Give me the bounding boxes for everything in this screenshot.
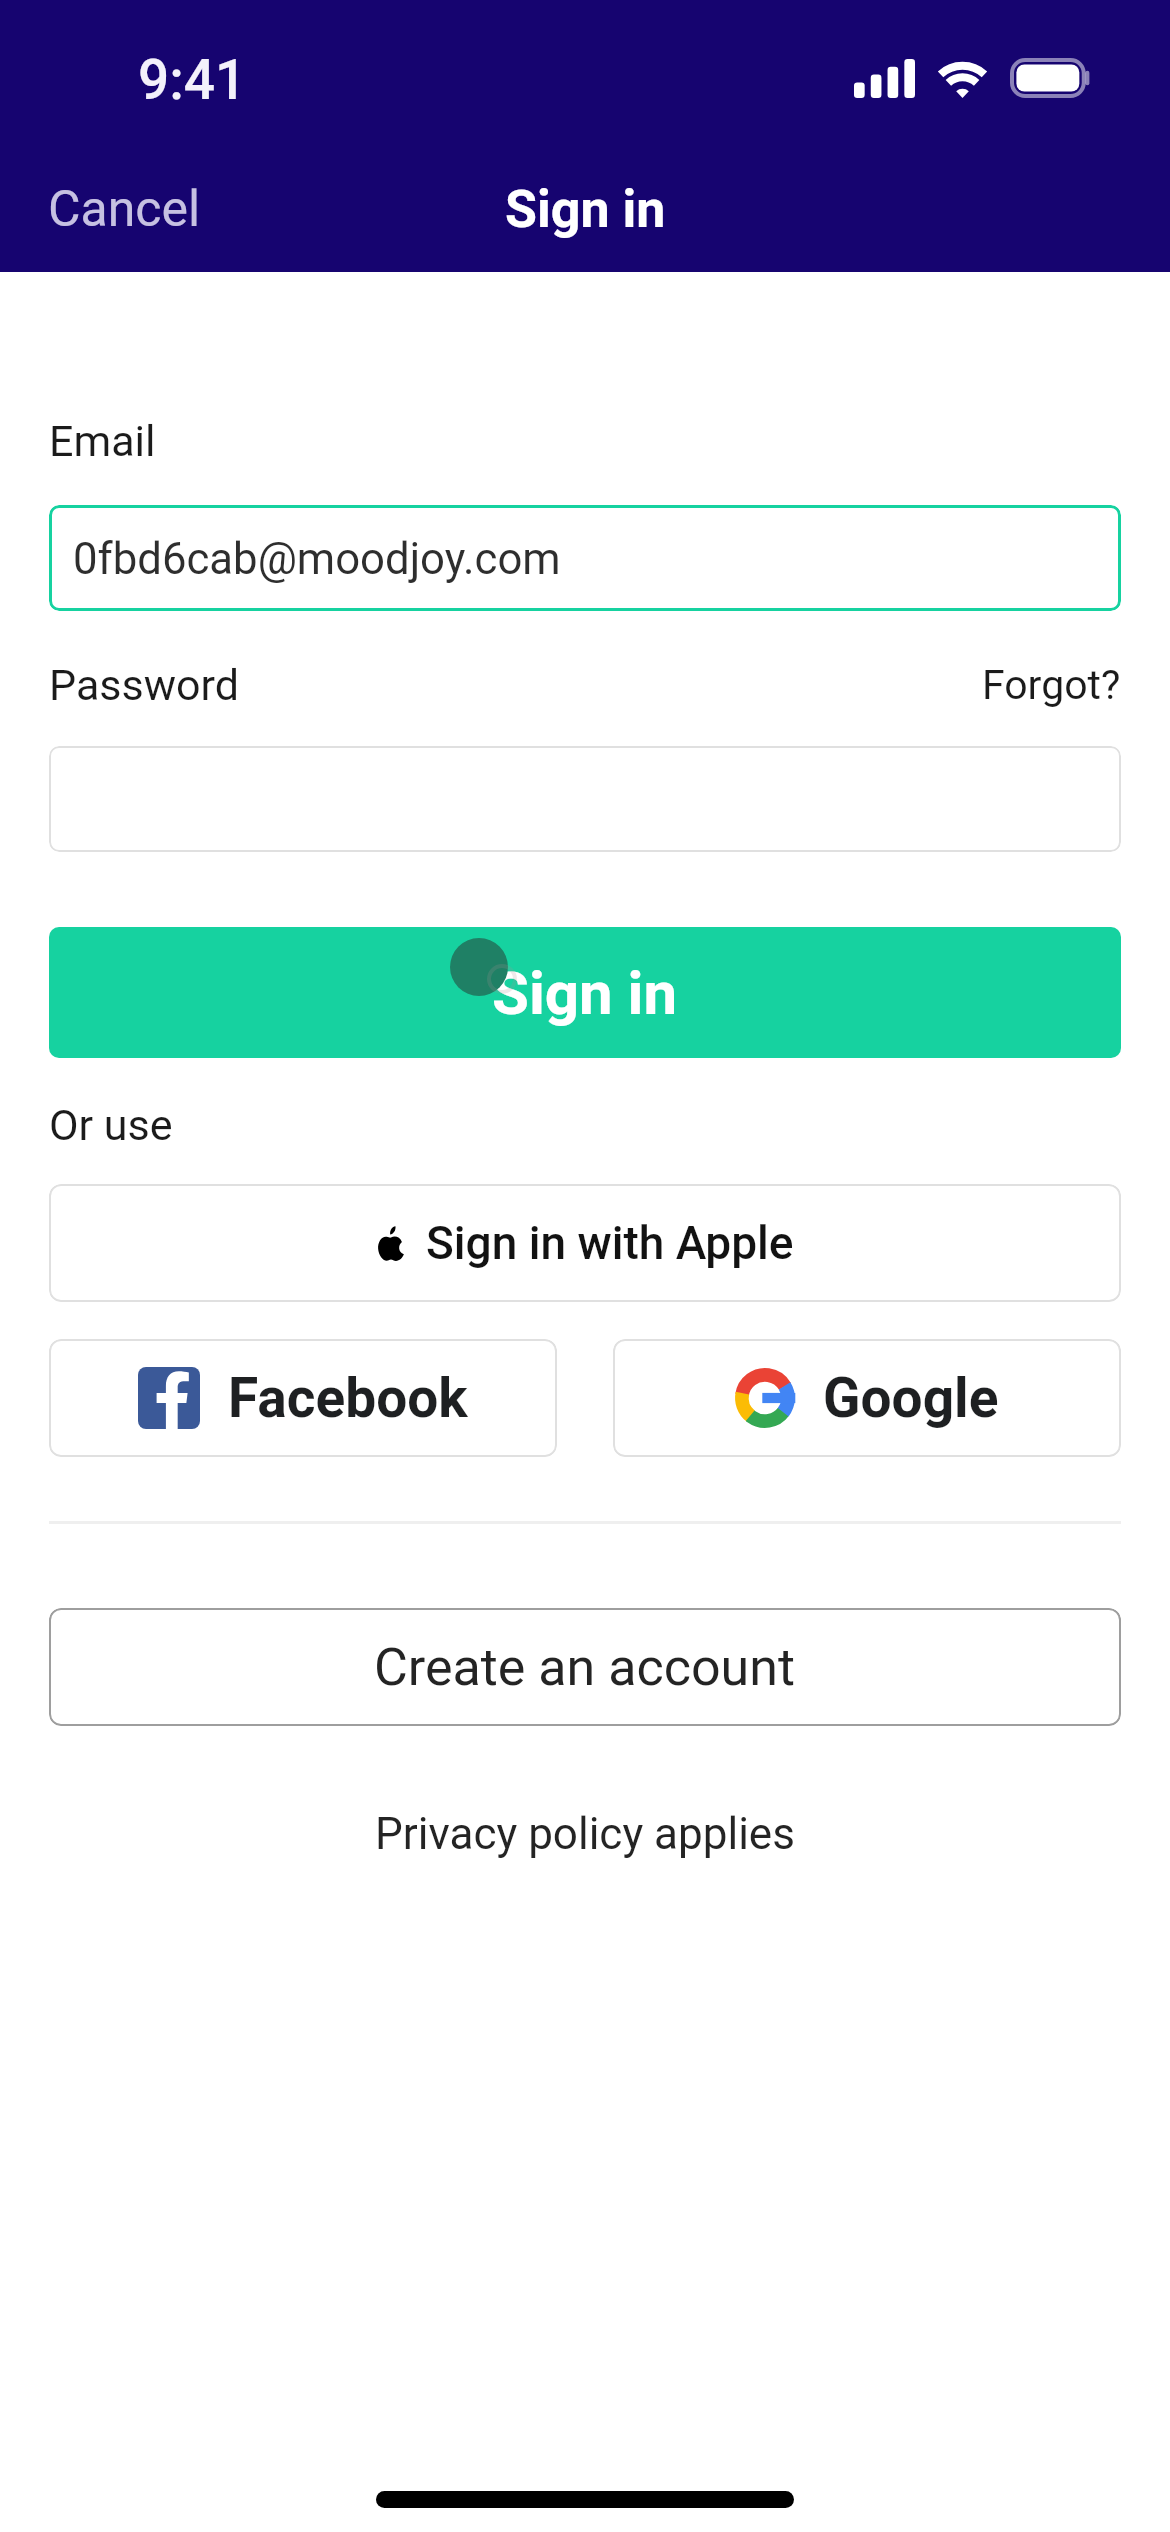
button[interactable]: Create an account [49,1608,1121,1726]
staticText: Email [49,416,156,466]
staticText: Google [823,1366,999,1430]
other: Battery [1010,58,1091,98]
button[interactable]: Privacy policy applies [363,1802,807,1866]
staticText: Sign in with Apple [426,1216,794,1270]
button[interactable]: Google [613,1339,1121,1457]
button[interactable]: Forgot? [982,661,1121,709]
staticText: Sign in [492,958,678,1028]
button[interactable]: Facebook [49,1339,557,1457]
staticText: 0fbd6cab@moodjoy.com [73,533,561,584]
button[interactable] [49,746,1121,852]
staticText: Facebook [228,1366,468,1430]
button[interactable]: 0fbd6cab@moodjoy.com [49,505,1121,611]
button[interactable]: Sign in [49,927,1121,1058]
staticText: 9:41 [138,48,247,112]
staticText: Create an account [374,1637,796,1698]
other: Wi-Fi [937,61,988,98]
staticText: Or use [49,1100,173,1150]
staticText: Password [49,660,239,710]
button[interactable]: Cancel [0,170,225,249]
staticText: Sign in [505,179,666,240]
button[interactable]: Sign in with Apple [49,1184,1121,1302]
other: Cellular signal [854,59,915,98]
